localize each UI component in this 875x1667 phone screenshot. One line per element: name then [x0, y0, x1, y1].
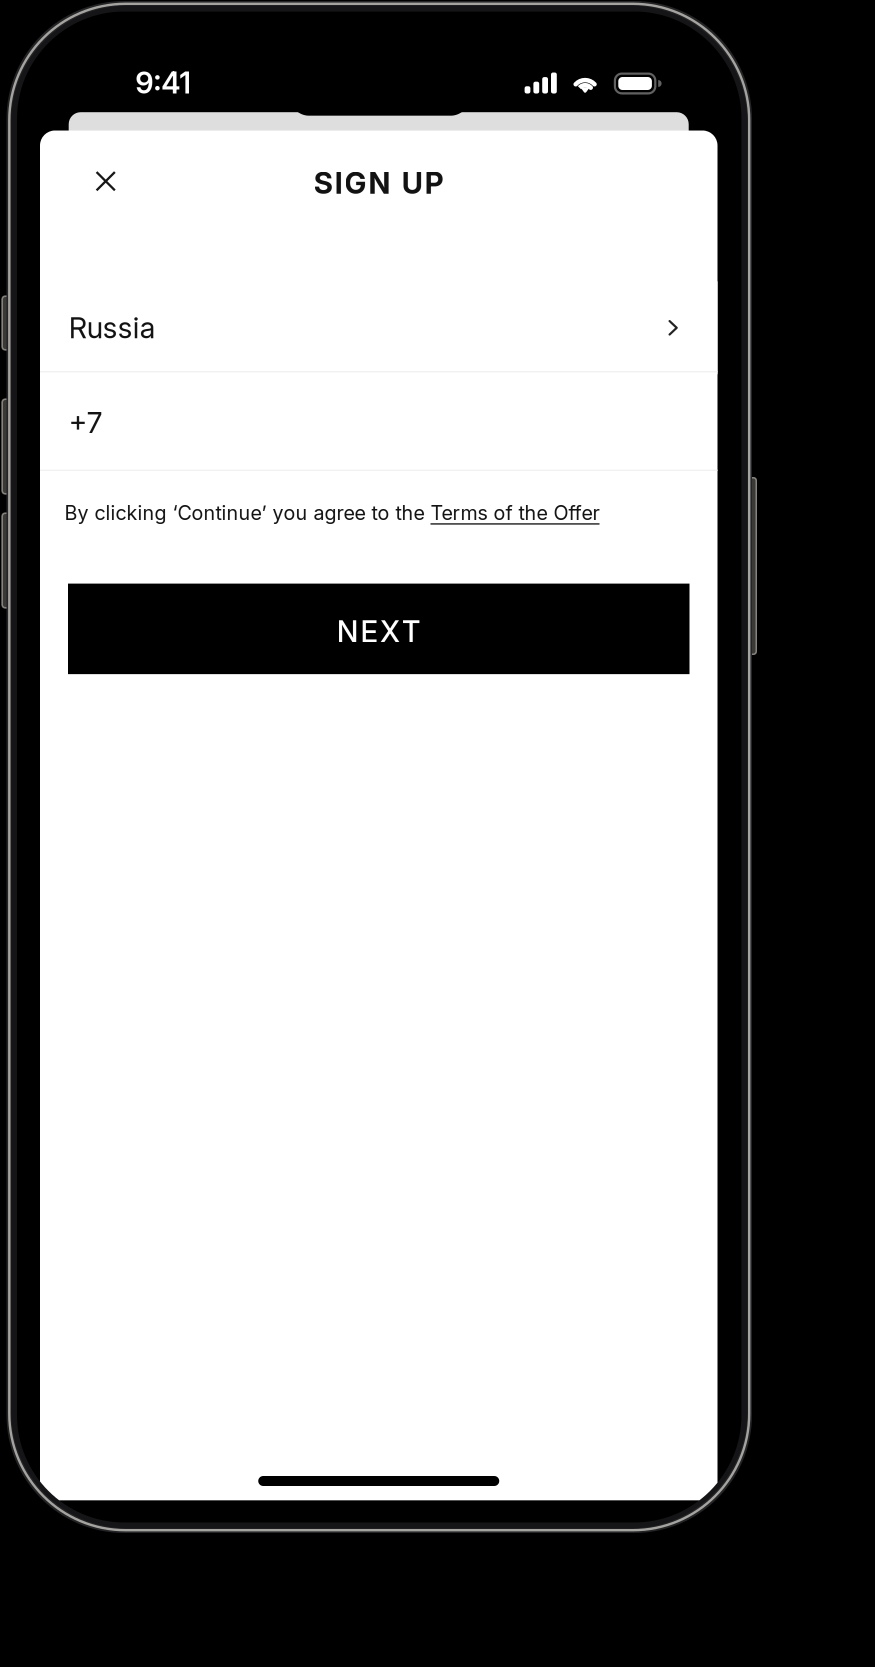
staticText: X	[380, 614, 400, 649]
button[interactable]: Russia	[40, 281, 717, 374]
staticText: E	[360, 614, 378, 649]
staticText: P	[425, 165, 444, 201]
button[interactable]: N	[68, 584, 689, 674]
button[interactable]: Terms of the Offer	[430, 501, 599, 525]
staticText: N	[337, 614, 359, 649]
staticText: Terms of the Offer	[430, 501, 599, 525]
staticText: 9:41	[135, 65, 191, 101]
staticText: I	[335, 165, 343, 201]
staticText: U	[402, 165, 423, 201]
staticText: G	[345, 165, 367, 201]
button[interactable]: Close	[74, 149, 138, 213]
staticText: +7	[69, 405, 103, 440]
staticText: S	[314, 165, 333, 201]
staticText: N	[368, 165, 390, 201]
staticText: T	[402, 614, 421, 649]
staticText: Russia	[69, 310, 156, 345]
staticText: By clicking ‘Continue’ you agree to the	[64, 501, 430, 525]
